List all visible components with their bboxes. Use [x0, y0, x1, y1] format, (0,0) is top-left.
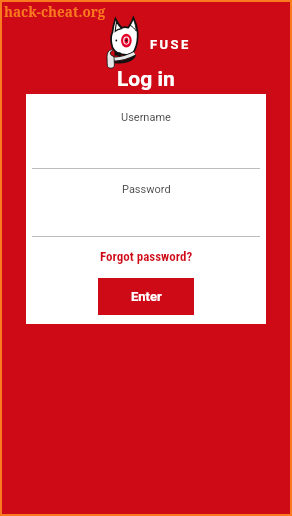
- button[interactable]: Password: [26, 170, 266, 236]
- staticText: Password: [122, 183, 171, 196]
- button[interactable]: Forgot password?: [94, 246, 199, 267]
- staticText: hack-cheat.org: [4, 3, 106, 21]
- staticText: Username: [121, 111, 171, 124]
- staticText: Log in: [117, 67, 175, 92]
- button[interactable]: Enter: [98, 278, 194, 315]
- staticText: Enter: [131, 289, 162, 304]
- staticText: FUSE: [150, 37, 191, 52]
- button[interactable]: Username: [26, 96, 266, 170]
- other: FUSE logo: [104, 14, 144, 68]
